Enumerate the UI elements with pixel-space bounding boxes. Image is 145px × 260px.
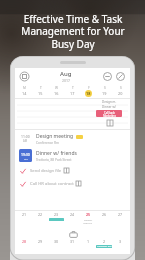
button[interactable]: 31 xyxy=(64,239,80,252)
staticText: 16 xyxy=(54,91,59,96)
staticText: 26 xyxy=(102,212,107,217)
button[interactable]: 11:00 xyxy=(19,130,126,147)
button[interactable]: Send design file xyxy=(20,164,125,177)
staticText: Weekend trip xyxy=(97,245,112,248)
staticText: 3 xyxy=(119,239,122,244)
staticText: M xyxy=(23,86,26,90)
button[interactable]: 22 xyxy=(32,212,48,227)
staticText: PM xyxy=(24,157,28,160)
staticText: 19:30 xyxy=(21,152,30,157)
button[interactable]: T xyxy=(64,85,80,98)
staticText: Call HR about contract xyxy=(30,181,74,187)
staticText: 31 xyxy=(70,239,75,244)
staticText: 21 xyxy=(22,212,27,217)
button[interactable]: 24 xyxy=(64,212,80,227)
staticText: W xyxy=(55,86,58,90)
staticText: 2 xyxy=(103,239,106,244)
button[interactable]: Search xyxy=(102,71,113,82)
staticText: Trattoria, 88 Park Street xyxy=(36,158,72,162)
button[interactable]: 29 xyxy=(32,239,48,252)
staticText: Conference Rm xyxy=(36,141,59,145)
staticText: Effective Time & Task Management for You… xyxy=(21,12,125,51)
button[interactable]: M xyxy=(17,85,32,98)
staticText: Call back Marketing xyxy=(103,111,116,117)
button[interactable]: 27 xyxy=(112,212,128,227)
button[interactable]: 19:30 xyxy=(19,147,126,164)
staticText: 25 xyxy=(86,212,91,217)
staticText: Dinner w/ xyxy=(102,105,116,109)
staticText: Design m. xyxy=(102,100,117,104)
staticText: 2017 xyxy=(62,78,71,83)
staticText: T xyxy=(72,86,74,90)
button[interactable]: 25 xyxy=(80,212,96,227)
button[interactable]: S xyxy=(96,85,112,98)
button[interactable]: 21 xyxy=(17,212,32,227)
button[interactable]: T xyxy=(32,85,48,98)
staticText: Dinner w/ friends xyxy=(36,150,77,157)
button[interactable]: Menu xyxy=(19,71,30,82)
staticText: 1 xyxy=(87,239,90,244)
staticText: 24 xyxy=(70,212,75,217)
staticText: AM xyxy=(23,139,28,143)
button[interactable]: F xyxy=(80,85,96,98)
button[interactable]: 28 xyxy=(17,239,32,252)
button[interactable]: 2 xyxy=(96,239,112,252)
staticText: 15 xyxy=(38,91,43,96)
staticText: 11:00 xyxy=(21,134,30,139)
staticText: 27 xyxy=(118,212,123,217)
button[interactable]: Task xyxy=(106,119,113,126)
staticText: T xyxy=(40,86,42,90)
button[interactable]: Edit xyxy=(115,71,126,82)
button[interactable]: 3 xyxy=(112,239,128,252)
button[interactable]: Work xyxy=(68,229,78,239)
staticText: 18 xyxy=(86,91,91,96)
staticText: 17 xyxy=(70,91,75,96)
button[interactable]: 23 xyxy=(48,212,64,227)
staticText: Dentist xyxy=(84,218,93,221)
staticText: 19 xyxy=(102,91,107,96)
staticText: 20 xyxy=(118,91,123,96)
button[interactable]: W xyxy=(48,85,64,98)
button[interactable]: Call HR about contract xyxy=(20,177,125,190)
staticText: Aug xyxy=(60,70,72,78)
staticText: 30 xyxy=(54,239,59,244)
button[interactable]: S xyxy=(112,85,128,98)
staticText: S xyxy=(104,86,106,90)
staticText: 28 xyxy=(22,239,27,244)
button[interactable]: Call back Marketing xyxy=(96,110,122,117)
staticText: 22 xyxy=(38,212,43,217)
button[interactable]: 1 xyxy=(80,239,96,252)
staticText: Design meeting xyxy=(36,133,74,140)
staticText: 23 xyxy=(54,212,59,217)
staticText: Yoga cls xyxy=(83,221,93,224)
button[interactable]: 26 xyxy=(96,212,112,227)
staticText: 14 xyxy=(22,91,27,96)
staticText: 29 xyxy=(38,239,43,244)
staticText: S xyxy=(120,86,122,90)
staticText: Send design file xyxy=(30,168,62,174)
staticText: F xyxy=(88,86,90,90)
button[interactable]: 30 xyxy=(48,239,64,252)
